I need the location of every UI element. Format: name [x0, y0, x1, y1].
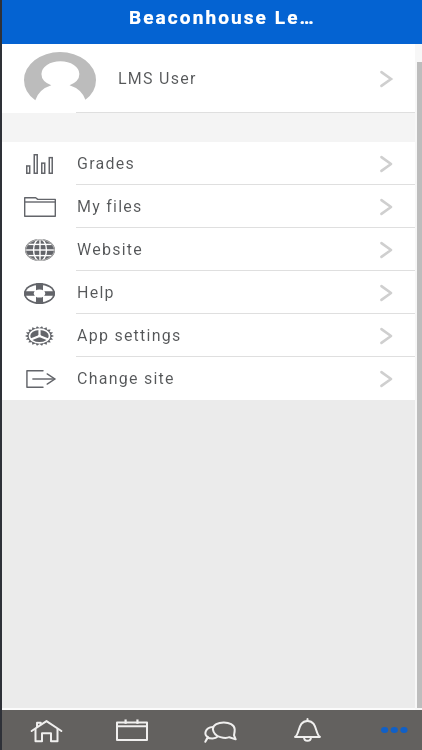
- staticText: LMS User: [118, 69, 197, 88]
- staticText: Beaconhouse Le…: [129, 6, 316, 28]
- staticText: Change site: [77, 369, 175, 388]
- button[interactable]: Messages: [197, 710, 241, 750]
- button[interactable]: More options: [372, 710, 416, 750]
- button[interactable]: App settings: [0, 314, 422, 357]
- button[interactable]: Change site: [0, 357, 422, 400]
- button[interactable]: My files: [0, 185, 422, 228]
- button[interactable]: Grades: [0, 142, 422, 185]
- staticText: Grades: [77, 154, 135, 173]
- staticText: Website: [77, 240, 144, 259]
- staticText: App settings: [77, 326, 182, 345]
- staticText: Help: [77, 283, 115, 302]
- button[interactable]: Home: [24, 710, 68, 750]
- staticText: My files: [77, 197, 143, 216]
- button[interactable]: Website: [0, 228, 422, 271]
- button[interactable]: LMS User: [0, 44, 422, 113]
- button[interactable]: Calendar: [110, 710, 154, 750]
- button[interactable]: Notifications: [285, 710, 329, 750]
- button[interactable]: Help: [0, 271, 422, 314]
